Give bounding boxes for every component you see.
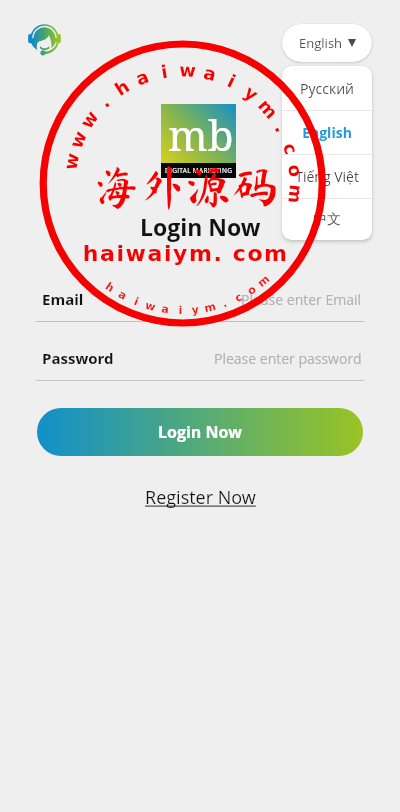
button[interactable]: Русский: [282, 66, 372, 110]
staticText: Login Now: [158, 421, 242, 443]
staticText: Please enter password: [214, 349, 362, 368]
staticText: English: [299, 34, 343, 52]
staticText: Login Now: [140, 211, 261, 242]
button[interactable]: Login Now: [37, 408, 363, 456]
staticText: Tiếng Việt: [295, 167, 359, 186]
staticText: 中文: [313, 211, 341, 229]
staticText: Русский: [300, 79, 354, 98]
button[interactable]: 中文: [282, 199, 372, 240]
button[interactable]: English: [282, 24, 372, 62]
staticText: Password: [42, 348, 114, 368]
button[interactable]: Tiếng Việt: [282, 155, 372, 198]
button[interactable]: English: [282, 111, 372, 154]
staticText: Register Now: [145, 485, 256, 510]
staticText: Please enter Email: [241, 290, 362, 309]
button[interactable]: Register Now: [139, 482, 262, 513]
staticText: Email: [42, 289, 84, 309]
button[interactable]: Email: [42, 287, 362, 311]
staticText: English: [302, 123, 352, 142]
button[interactable]: Customer support: [28, 23, 61, 56]
staticText: DIGITAL MARKETING: [165, 166, 233, 175]
staticText: mb: [168, 106, 234, 163]
button[interactable]: Password: [42, 346, 362, 370]
